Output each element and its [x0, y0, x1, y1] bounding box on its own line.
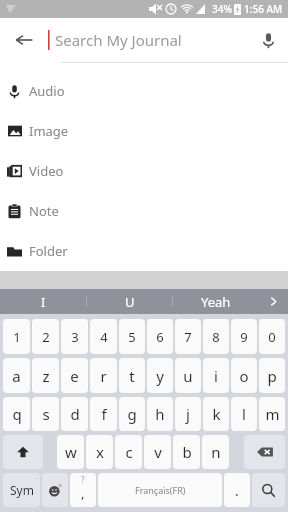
staticText: Audio [29, 82, 65, 100]
button[interactable]: Note [0, 191, 288, 231]
button[interactable]: l [231, 397, 257, 431]
button[interactable]: n [202, 435, 229, 469]
button[interactable]: Back [0, 18, 48, 62]
staticText: s [42, 404, 50, 424]
button[interactable]: . [224, 473, 250, 507]
button[interactable]: 9 [231, 319, 257, 354]
button[interactable]: 2 [32, 319, 59, 354]
staticText: Yeah [201, 293, 231, 311]
staticText: 4 [100, 328, 108, 346]
staticText: t [129, 366, 135, 386]
staticText: 2 [42, 328, 50, 346]
button[interactable]: m [259, 397, 285, 431]
button[interactable]: g [119, 397, 145, 431]
staticText: I [41, 293, 46, 311]
button[interactable]: y [147, 358, 173, 393]
button[interactable]: s [32, 397, 59, 431]
button[interactable]: 3 [61, 319, 88, 354]
button[interactable]: z [32, 358, 59, 393]
button[interactable]: Sym [3, 473, 40, 507]
button[interactable]: o [231, 358, 257, 393]
staticText: f [101, 404, 107, 424]
staticText: a [12, 366, 21, 386]
staticText: Note [29, 202, 59, 220]
button[interactable]: Yeah [173, 289, 258, 314]
button[interactable]: h [147, 397, 173, 431]
staticText: q [12, 404, 22, 424]
staticText: n [211, 442, 221, 462]
staticText: , [81, 484, 85, 502]
button[interactable]: Voice search [248, 18, 288, 62]
staticText: 34% [212, 2, 232, 16]
button[interactable]: e [61, 358, 88, 393]
button[interactable]: j [175, 397, 201, 431]
staticText: Sym [10, 482, 34, 498]
button[interactable]: Search My Journal [48, 18, 248, 62]
button[interactable]: t [119, 358, 145, 393]
button[interactable]: r [90, 358, 117, 393]
button[interactable]: 0 [259, 319, 285, 354]
staticText: 5 [128, 328, 136, 346]
staticText: ? [81, 474, 85, 485]
button[interactable]: Emoji [42, 473, 68, 507]
staticText: Search My Journal [55, 30, 182, 50]
staticText: i [214, 366, 218, 386]
button[interactable]: Image [0, 111, 288, 151]
button[interactable]: More suggestions [258, 289, 288, 314]
button[interactable]: x [86, 435, 113, 469]
staticText: Français(FR) [135, 484, 186, 496]
button[interactable]: Search [252, 473, 285, 507]
button[interactable]: 1 [3, 319, 30, 354]
button[interactable]: I [0, 289, 86, 314]
button[interactable]: f [90, 397, 117, 431]
button[interactable]: 5 [119, 319, 145, 354]
staticText: 9 [240, 328, 248, 346]
button[interactable]: Backspace [244, 435, 285, 469]
staticText: d [70, 404, 80, 424]
staticText: o [239, 366, 249, 386]
staticText: 0 [268, 328, 276, 346]
button[interactable]: Video [0, 151, 288, 191]
staticText: U [125, 293, 135, 311]
staticText: 6 [156, 328, 164, 346]
button[interactable]: i [203, 358, 229, 393]
button[interactable]: d [61, 397, 88, 431]
staticText: l [242, 404, 246, 424]
button[interactable]: w [57, 435, 84, 469]
button[interactable]: 7 [175, 319, 201, 354]
staticText: Folder [29, 242, 68, 260]
staticText: j [186, 404, 190, 424]
staticText: k [212, 404, 221, 424]
staticText: g [127, 404, 137, 424]
button[interactable]: Folder [0, 231, 288, 271]
staticText: z [42, 366, 50, 386]
button[interactable]: v [144, 435, 171, 469]
staticText: Video [29, 162, 64, 180]
button[interactable]: ? [70, 473, 96, 507]
staticText: 3 [71, 328, 79, 346]
staticText: . [235, 481, 239, 500]
button[interactable]: a [3, 358, 30, 393]
button[interactable]: Audio [0, 71, 288, 111]
staticText: e [70, 366, 79, 386]
button[interactable]: 8 [203, 319, 229, 354]
button[interactable]: u [175, 358, 201, 393]
button[interactable]: k [203, 397, 229, 431]
staticText: 1:56 AM [244, 2, 283, 16]
staticText: p [267, 366, 277, 386]
staticText: w [65, 442, 77, 462]
staticText: h [155, 404, 165, 424]
button[interactable]: Shift [3, 435, 43, 469]
staticText: r [100, 366, 107, 386]
button[interactable]: c [115, 435, 142, 469]
staticText: c [125, 442, 133, 462]
staticText: m [265, 404, 280, 424]
button[interactable]: q [3, 397, 30, 431]
button[interactable]: b [173, 435, 200, 469]
button[interactable]: p [259, 358, 285, 393]
button[interactable]: 4 [90, 319, 117, 354]
button[interactable]: 6 [147, 319, 173, 354]
staticText: y [156, 366, 164, 386]
button[interactable]: Français(FR) [98, 473, 222, 507]
button[interactable]: U [87, 289, 172, 314]
